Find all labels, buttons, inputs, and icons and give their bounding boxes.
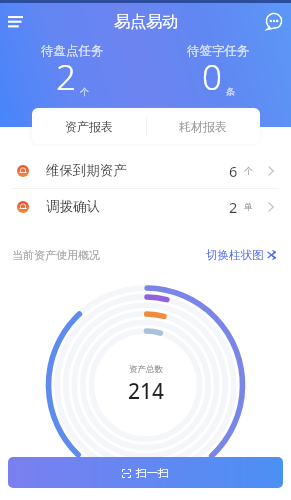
- staticText: 待盘点任务: [41, 43, 104, 59]
- button[interactable]: Menu: [3, 10, 27, 34]
- staticText: 2: [56, 53, 76, 101]
- staticText: 0: [202, 53, 222, 101]
- button[interactable]: 待签字任务: [145, 42, 291, 104]
- staticText: 耗材报表: [179, 119, 227, 134]
- button[interactable]: Messages: [262, 9, 286, 33]
- staticText: 资产报表: [65, 119, 113, 134]
- button[interactable]: 扫一扫: [8, 457, 283, 488]
- button[interactable]: 维保到期资产: [0, 153, 291, 188]
- staticText: 维保到期资产: [46, 162, 127, 179]
- staticText: 切换柱状图: [206, 248, 264, 262]
- staticText: 214: [128, 377, 165, 406]
- button[interactable]: 调拨确认: [0, 189, 291, 224]
- staticText: 当前资产使用概况: [12, 248, 100, 262]
- button[interactable]: 资产报表: [32, 108, 146, 144]
- button[interactable]: 耗材报表: [146, 108, 260, 144]
- staticText: 条: [226, 86, 235, 97]
- staticText: 2: [229, 197, 238, 217]
- staticText: 个: [244, 165, 253, 176]
- staticText: 个: [80, 86, 89, 97]
- staticText: 调拨确认: [46, 198, 100, 215]
- staticText: 待签字任务: [187, 43, 250, 59]
- staticText: 资产总数: [129, 364, 163, 375]
- staticText: 扫一扫: [136, 466, 169, 480]
- staticText: 6: [229, 161, 238, 181]
- staticText: 单: [244, 201, 253, 212]
- button[interactable]: 切换柱状图: [206, 248, 278, 262]
- staticText: 易点易动: [114, 12, 178, 32]
- button[interactable]: 待盘点任务: [0, 42, 145, 104]
